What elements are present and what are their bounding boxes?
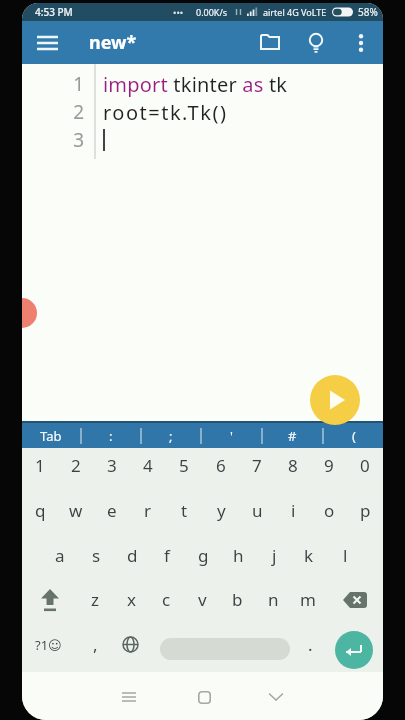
- button[interactable]: 7: [239, 443, 275, 488]
- button[interactable]: 3: [94, 443, 130, 488]
- button[interactable]: k: [291, 533, 327, 578]
- staticText: h: [233, 544, 244, 567]
- button[interactable]: (: [324, 423, 383, 448]
- button[interactable]: v: [184, 577, 220, 622]
- button[interactable]: ?1☺: [22, 622, 74, 667]
- button[interactable]: 4: [130, 443, 166, 488]
- button[interactable]: h: [220, 533, 256, 578]
- button[interactable]: 1: [22, 443, 58, 488]
- staticText: i: [291, 499, 296, 522]
- staticText: •••: [173, 6, 184, 18]
- button[interactable]: n: [255, 577, 291, 622]
- staticText: k: [304, 544, 314, 567]
- button[interactable]: ': [202, 423, 261, 448]
- button[interactable]: ,: [74, 622, 116, 667]
- button[interactable]: r: [130, 488, 166, 533]
- staticText: 1: [35, 454, 45, 477]
- staticText: j: [272, 544, 277, 567]
- button[interactable]: e: [94, 488, 130, 533]
- staticText: r: [144, 499, 152, 522]
- staticText: t: [181, 499, 188, 522]
- staticText: q: [35, 499, 46, 522]
- button[interactable]: 2: [58, 443, 94, 488]
- button[interactable]: :: [82, 423, 140, 448]
- staticText: z: [91, 588, 99, 611]
- staticText: w: [69, 499, 83, 522]
- staticText: 5: [179, 454, 189, 477]
- button[interactable]: t: [166, 488, 202, 533]
- staticText: n: [268, 588, 279, 611]
- button[interactable]: [22, 577, 77, 622]
- staticText: f: [164, 544, 170, 567]
- staticText: 4:53 PM: [35, 5, 73, 19]
- staticText: s: [92, 544, 101, 567]
- button[interactable]: [310, 375, 360, 425]
- staticText: ?1☺: [35, 636, 62, 654]
- button[interactable]: g: [185, 533, 221, 578]
- button[interactable]: [182, 684, 226, 710]
- button[interactable]: c: [148, 577, 184, 622]
- staticText: 9: [324, 454, 334, 477]
- button[interactable]: 0: [347, 443, 383, 488]
- button[interactable]: z: [77, 577, 113, 622]
- button[interactable]: [339, 21, 383, 64]
- button[interactable]: o: [311, 488, 347, 533]
- button[interactable]: [247, 21, 293, 64]
- button[interactable]: Tab: [22, 423, 80, 448]
- button[interactable]: b: [219, 577, 255, 622]
- button[interactable]: w: [58, 488, 94, 533]
- button[interactable]: #: [263, 423, 322, 448]
- staticText: o: [324, 499, 335, 522]
- button[interactable]: 5: [166, 443, 202, 488]
- button[interactable]: 8: [275, 443, 311, 488]
- button[interactable]: i: [275, 488, 311, 533]
- button[interactable]: [107, 684, 151, 710]
- button[interactable]: [293, 21, 339, 64]
- staticText: 6: [216, 454, 226, 477]
- staticText: m: [300, 588, 316, 611]
- staticText: e: [107, 499, 117, 522]
- button[interactable]: p: [347, 488, 383, 533]
- staticText: c: [162, 588, 171, 611]
- staticText: Tab: [40, 427, 62, 445]
- button[interactable]: .: [290, 622, 330, 667]
- button[interactable]: u: [239, 488, 275, 533]
- button[interactable]: q: [22, 488, 58, 533]
- button[interactable]: l: [327, 533, 363, 578]
- button[interactable]: m: [290, 577, 326, 622]
- button[interactable]: ;: [142, 423, 200, 448]
- staticText: ': [230, 427, 233, 445]
- button[interactable]: x: [113, 577, 149, 622]
- staticText: 0: [360, 454, 370, 477]
- staticText: new*: [89, 30, 137, 55]
- staticText: y: [217, 499, 226, 522]
- staticText: ,: [93, 633, 98, 656]
- button[interactable]: [116, 622, 144, 667]
- button[interactable]: s: [78, 533, 114, 578]
- staticText: 2: [71, 454, 81, 477]
- button[interactable]: j: [256, 533, 292, 578]
- staticText: .: [308, 633, 313, 656]
- staticText: ;: [169, 427, 173, 445]
- staticText: a: [55, 544, 65, 567]
- staticText: 7: [252, 454, 262, 477]
- staticText: 3: [107, 454, 117, 477]
- button[interactable]: [326, 577, 383, 622]
- staticText: u: [252, 499, 263, 522]
- staticText: b: [232, 588, 243, 611]
- staticText: import tkinter as tk root=tk.Tk(): [103, 71, 288, 126]
- button[interactable]: [160, 638, 290, 660]
- button[interactable]: f: [149, 533, 185, 578]
- staticText: 4: [143, 454, 153, 477]
- staticText: x: [127, 588, 136, 611]
- button[interactable]: [254, 684, 298, 710]
- staticText: 58%: [358, 5, 378, 19]
- button[interactable]: [25, 21, 69, 64]
- button[interactable]: a: [42, 533, 78, 578]
- button[interactable]: y: [203, 488, 239, 533]
- button[interactable]: 9: [311, 443, 347, 488]
- button[interactable]: 6: [203, 443, 239, 488]
- staticText: g: [198, 544, 209, 567]
- button[interactable]: [335, 631, 373, 669]
- button[interactable]: d: [114, 533, 150, 578]
